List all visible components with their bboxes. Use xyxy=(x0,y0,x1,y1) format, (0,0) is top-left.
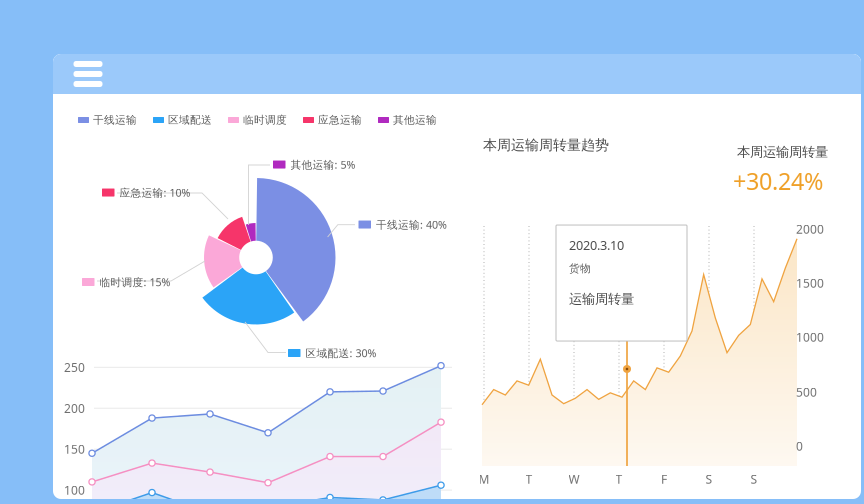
staticText: 干线运输 xyxy=(93,113,137,127)
staticText: T xyxy=(525,471,532,487)
staticText: 区域配送: 30% xyxy=(305,346,376,360)
staticText: 本周运输周转量趋势 xyxy=(483,136,609,154)
staticText: 区域配送 xyxy=(168,113,212,127)
button[interactable]: 应急运输 xyxy=(303,111,378,129)
staticText: 临时调度 xyxy=(243,113,287,127)
staticText: 1000 xyxy=(796,329,824,345)
staticText: 其他运输 xyxy=(393,113,437,127)
staticText: 运输周转量 xyxy=(569,291,634,307)
staticText: 2020.3.10 xyxy=(569,236,624,254)
staticText: M xyxy=(478,471,489,487)
staticText: 1500 xyxy=(796,275,824,291)
button[interactable]: Menu xyxy=(66,57,110,91)
staticText: 0 xyxy=(796,438,803,454)
staticText: 干线运输: 40% xyxy=(376,217,447,232)
staticText: S xyxy=(705,471,712,487)
staticText: 2000 xyxy=(796,221,824,237)
button[interactable]: 其他运输 xyxy=(378,111,453,129)
staticText: 本周运输周转量 xyxy=(737,144,828,160)
staticText: F xyxy=(661,471,667,487)
button[interactable]: 干线运输 xyxy=(78,111,153,129)
staticText: 应急运输 xyxy=(318,113,362,127)
staticText: 货物 xyxy=(569,262,591,275)
button[interactable]: 临时调度 xyxy=(228,111,303,129)
staticText: 100 xyxy=(64,482,85,498)
button[interactable]: 区域配送 xyxy=(153,111,228,129)
staticText: 500 xyxy=(796,384,817,400)
staticText: S xyxy=(750,471,757,487)
staticText: 应急运输: 10% xyxy=(119,185,190,200)
staticText: 200 xyxy=(64,400,85,416)
staticText: 临时调度: 15% xyxy=(99,275,170,289)
staticText: 其他运输: 5% xyxy=(290,157,355,172)
staticText: T xyxy=(615,471,622,487)
staticText: W xyxy=(568,471,579,487)
staticText: 250 xyxy=(64,359,85,375)
staticText: 150 xyxy=(64,441,85,457)
staticText: +30.24% xyxy=(733,165,823,197)
